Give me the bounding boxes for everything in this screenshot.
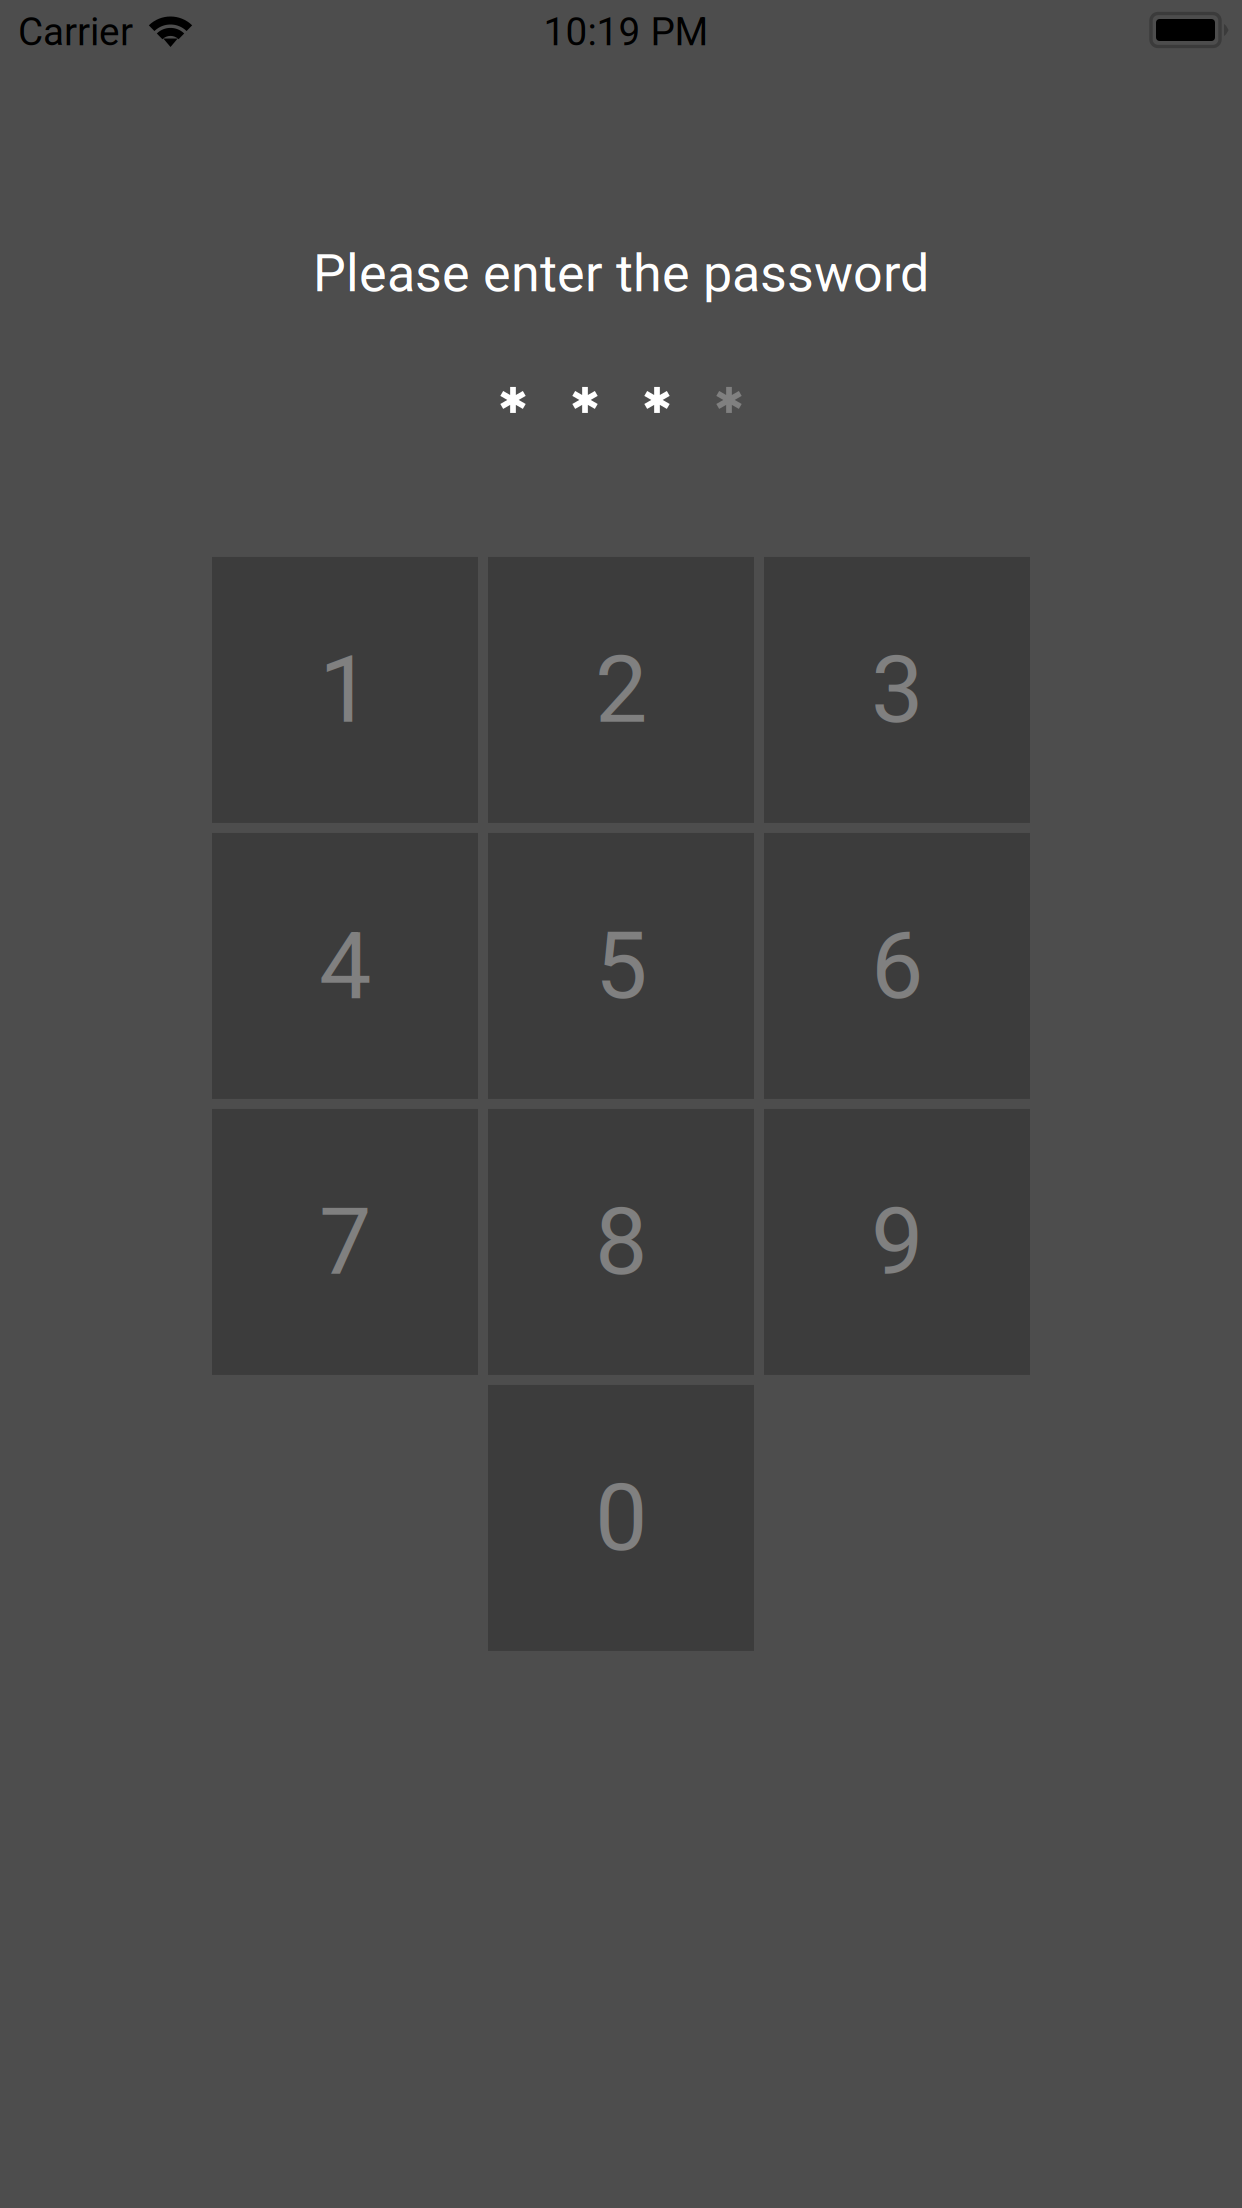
button[interactable]: 1 xyxy=(212,557,478,823)
button[interactable]: 3 xyxy=(764,557,1030,823)
staticText: 1 xyxy=(319,635,371,745)
staticText: 3 xyxy=(871,635,923,745)
staticText: Carrier xyxy=(18,9,133,55)
button[interactable]: 6 xyxy=(764,833,1030,1099)
staticText: 2 xyxy=(595,635,647,745)
staticText: 8 xyxy=(595,1187,647,1297)
button[interactable]: 2 xyxy=(488,557,754,823)
button[interactable]: 5 xyxy=(488,833,754,1099)
staticText: 7 xyxy=(319,1187,371,1297)
staticText: 4 xyxy=(319,911,371,1021)
button[interactable]: 7 xyxy=(212,1109,478,1375)
staticText: 0 xyxy=(595,1463,647,1573)
staticText: 9 xyxy=(871,1187,923,1297)
staticText: 6 xyxy=(871,911,923,1021)
button[interactable]: 8 xyxy=(488,1109,754,1375)
staticText: 5 xyxy=(595,911,647,1021)
staticText: 10:19 PM xyxy=(543,9,708,55)
button[interactable]: 4 xyxy=(212,833,478,1099)
button[interactable]: 9 xyxy=(764,1109,1030,1375)
staticText: Please enter the password xyxy=(313,243,929,304)
button[interactable]: 0 xyxy=(488,1385,754,1651)
